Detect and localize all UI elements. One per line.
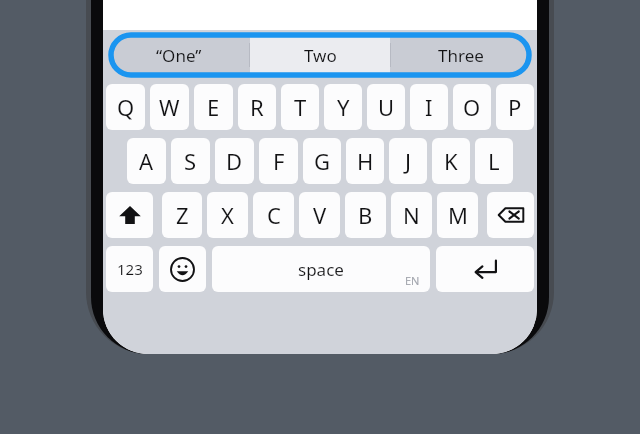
staticText: Q	[117, 92, 135, 122]
staticText: O	[463, 92, 481, 122]
button[interactable]: P	[496, 84, 534, 130]
staticText: K	[444, 146, 458, 176]
staticText: R	[250, 92, 264, 122]
button[interactable]: D	[215, 138, 254, 184]
staticText: Two	[304, 44, 337, 67]
staticText: X	[221, 200, 234, 230]
staticText: A	[139, 146, 154, 176]
button[interactable]: Return	[436, 246, 534, 292]
staticText: I	[425, 92, 433, 122]
button[interactable]: Y	[324, 84, 362, 130]
staticText: E	[207, 92, 220, 122]
staticText: “One”	[156, 44, 202, 67]
staticText: V	[313, 200, 327, 230]
staticText: J	[405, 146, 412, 176]
button[interactable]: N	[391, 192, 432, 238]
staticText: C	[267, 200, 281, 230]
staticText: EN	[405, 273, 420, 288]
staticText: M	[448, 200, 468, 230]
button[interactable]: L	[475, 138, 513, 184]
staticText: Y	[337, 92, 350, 122]
staticText: Z	[176, 200, 189, 230]
button[interactable]: J	[389, 138, 427, 184]
button[interactable]: 123	[106, 246, 153, 292]
button[interactable]: Two	[250, 35, 390, 75]
staticText: P	[508, 92, 522, 122]
button[interactable]: X	[207, 192, 248, 238]
button[interactable]: Delete	[487, 192, 534, 238]
button[interactable]: E	[194, 84, 233, 130]
button[interactable]: U	[367, 84, 405, 130]
button[interactable]: Shift	[106, 192, 153, 238]
button[interactable]: R	[238, 84, 276, 130]
button[interactable]: M	[437, 192, 478, 238]
button[interactable]: T	[281, 84, 319, 130]
staticText: B	[358, 200, 373, 230]
button[interactable]: Three	[391, 35, 531, 75]
button[interactable]: B	[345, 192, 386, 238]
button[interactable]: A	[127, 138, 166, 184]
staticText: L	[488, 146, 500, 176]
staticText: G	[314, 146, 331, 176]
button[interactable]: Q	[106, 84, 145, 130]
staticText: D	[226, 146, 243, 176]
staticText: 123	[117, 259, 143, 279]
staticText: F	[273, 146, 285, 176]
staticText: S	[184, 146, 197, 176]
button[interactable]: G	[303, 138, 341, 184]
button[interactable]: O	[453, 84, 491, 130]
staticText: T	[294, 92, 307, 122]
staticText: W	[159, 92, 180, 122]
staticText: Three	[438, 44, 484, 67]
button[interactable]: “One”	[109, 35, 249, 75]
button[interactable]: S	[171, 138, 210, 184]
button[interactable]: Z	[162, 192, 202, 238]
staticText: H	[357, 146, 374, 176]
button[interactable]: I	[410, 84, 448, 130]
button[interactable]: C	[253, 192, 294, 238]
button[interactable]: V	[299, 192, 340, 238]
button[interactable]: H	[346, 138, 384, 184]
staticText: U	[378, 92, 395, 122]
button[interactable]: W	[150, 84, 189, 130]
staticText: N	[403, 200, 420, 230]
button[interactable]: K	[432, 138, 470, 184]
button[interactable]: space	[212, 246, 430, 292]
staticText: space	[298, 258, 344, 281]
button[interactable]: F	[259, 138, 298, 184]
button[interactable]: Emoji	[159, 246, 206, 292]
